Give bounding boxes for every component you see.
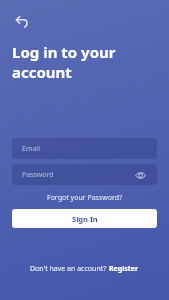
staticText: Register bbox=[109, 264, 139, 274]
staticText: Password bbox=[22, 170, 54, 180]
button[interactable]: Sign In bbox=[12, 209, 157, 228]
button[interactable]: Forgot your Password? bbox=[41, 192, 129, 204]
button[interactable]: Email bbox=[12, 138, 157, 159]
button[interactable]: Don't have an account? bbox=[0, 262, 169, 276]
button[interactable]: Show password bbox=[133, 168, 147, 182]
staticText: Sign In bbox=[72, 214, 98, 224]
button[interactable]: Password bbox=[12, 164, 157, 185]
staticText: Log in to your account bbox=[12, 42, 116, 82]
staticText: Forgot your Password? bbox=[47, 193, 123, 203]
button[interactable]: Back bbox=[8, 8, 36, 36]
staticText: Don't have an account? bbox=[30, 264, 109, 274]
staticText: Email bbox=[22, 144, 40, 154]
